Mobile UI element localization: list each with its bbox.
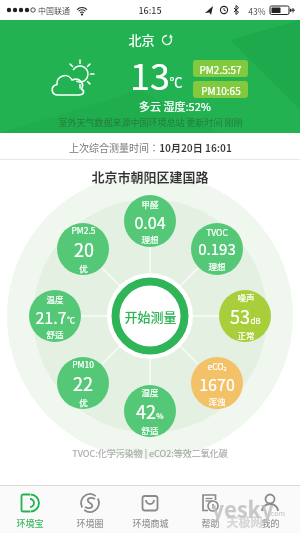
staticText: 开始测量	[124, 307, 177, 326]
staticText: 10月20日 16:01	[159, 140, 232, 154]
button[interactable]: 环境圈	[60, 486, 120, 533]
staticText: 北京市朝阳区建国路	[91, 167, 209, 186]
staticText: 北京	[128, 30, 155, 49]
staticText: 20	[74, 236, 94, 262]
staticText: .com	[269, 508, 285, 518]
button[interactable]: 帮助	[180, 486, 240, 533]
button[interactable]: PM2.5:57	[193, 60, 248, 77]
staticText: 优	[79, 396, 88, 408]
staticText: 舒适	[46, 328, 64, 340]
staticText: 0.193	[198, 238, 236, 260]
staticText: 温度	[46, 293, 64, 305]
staticText: 上次综合测量时间：	[69, 140, 159, 154]
staticText: 浑浊	[208, 395, 226, 407]
staticText: 湿度	[141, 386, 159, 398]
staticText: dB	[250, 315, 261, 327]
staticText: 室外天气数据来源中国环境总站 更新时间 刚刚	[58, 116, 243, 129]
button[interactable]: 北京	[128, 30, 173, 49]
staticText: 噪声	[237, 291, 255, 303]
staticText: 优	[79, 262, 88, 274]
staticText: %	[156, 410, 164, 422]
button[interactable]: 环境宝	[0, 486, 60, 533]
staticText: 42	[136, 398, 156, 424]
staticText: 帮助	[201, 517, 220, 530]
staticText: 甲醛	[141, 198, 159, 210]
button[interactable]: PM10:65	[193, 81, 248, 98]
button[interactable]: 我的	[240, 486, 300, 533]
staticText: PM10:65	[201, 83, 241, 97]
staticText: 环境宝	[16, 517, 44, 530]
staticText: 多云 湿度:52%	[139, 98, 211, 114]
staticText: 53	[230, 303, 250, 329]
staticText: PM2.5	[71, 224, 96, 236]
staticText: eCO₂	[207, 360, 227, 372]
button[interactable]: 环境商城	[120, 486, 180, 533]
staticText: 环境商城	[132, 517, 169, 530]
staticText: PM2.5:57	[199, 62, 242, 76]
staticText: 理想	[141, 233, 159, 245]
staticText: 天极网	[226, 513, 263, 530]
staticText: ℃	[67, 314, 75, 326]
button[interactable]: 开始测量	[107, 273, 193, 359]
staticText: ℃	[169, 72, 183, 91]
staticText: 我的	[261, 517, 280, 530]
staticText: 43%	[248, 5, 266, 17]
staticText: 16:15	[138, 4, 162, 17]
staticText: 舒适	[141, 424, 159, 436]
staticText: yesky	[211, 492, 274, 524]
staticText: 22	[73, 370, 93, 396]
staticText: 理想	[208, 260, 226, 272]
staticText: 环境圈	[76, 517, 104, 530]
staticText: 正常	[237, 329, 255, 341]
staticText: 0.04	[134, 210, 166, 233]
staticText: 13	[130, 48, 170, 100]
staticText: 中国联通	[38, 5, 70, 17]
staticText: 21.7	[35, 305, 67, 328]
staticText: TVOC:化学污染物 | eCO2:等效二氧化碳	[0, 447, 300, 460]
staticText: PM10	[72, 358, 94, 370]
staticText: TVOC	[206, 226, 228, 238]
staticText: 1670	[199, 372, 235, 395]
